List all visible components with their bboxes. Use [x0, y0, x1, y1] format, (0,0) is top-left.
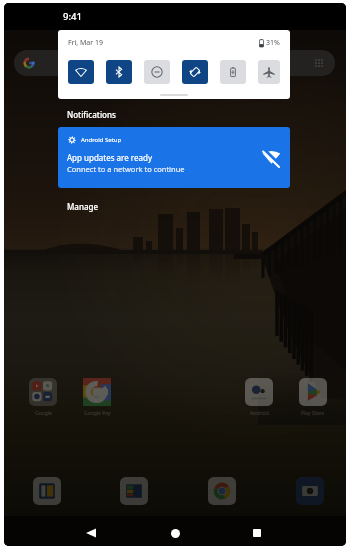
button[interactable]: Play Store: [296, 378, 330, 417]
button[interactable]: Google Pay: [80, 378, 114, 417]
staticText: App updates are ready: [67, 152, 152, 163]
button[interactable]: Android Setup: [58, 127, 290, 188]
button[interactable]: Bluetooth: [106, 60, 132, 84]
staticText: Notifications: [67, 109, 116, 120]
staticText: Manage: [67, 201, 99, 212]
staticText: Fri, Mar 19: [68, 38, 104, 48]
button[interactable]: Do not disturb: [144, 60, 170, 84]
button[interactable]: Recent apps: [243, 519, 271, 546]
button[interactable]: Camera: [296, 477, 324, 505]
button[interactable]: Calendar: [33, 477, 61, 505]
button[interactable]: Chrome: [208, 477, 236, 505]
button[interactable]: News: [120, 477, 148, 505]
staticText: Android: [250, 410, 269, 417]
button[interactable]: Back: [77, 519, 105, 546]
button[interactable]: Home: [161, 519, 189, 546]
button[interactable]: Google: [26, 378, 60, 417]
button[interactable]: Search: [14, 50, 335, 76]
staticText: 31%: [266, 38, 280, 48]
button[interactable]: Airplane mode: [258, 60, 280, 84]
button[interactable]: Wi-Fi: [68, 60, 94, 84]
staticText: Play Store: [301, 410, 325, 417]
staticText: Google: [35, 410, 52, 417]
staticText: Android Setup: [81, 136, 122, 144]
button[interactable]: Android: [242, 378, 276, 417]
button[interactable]: Auto-rotate: [182, 60, 208, 84]
staticText: Connect to a network to continue: [67, 164, 185, 174]
button[interactable]: Battery saver: [220, 60, 246, 84]
staticText: 9:41: [63, 10, 82, 23]
staticText: Google Pay: [84, 410, 111, 417]
